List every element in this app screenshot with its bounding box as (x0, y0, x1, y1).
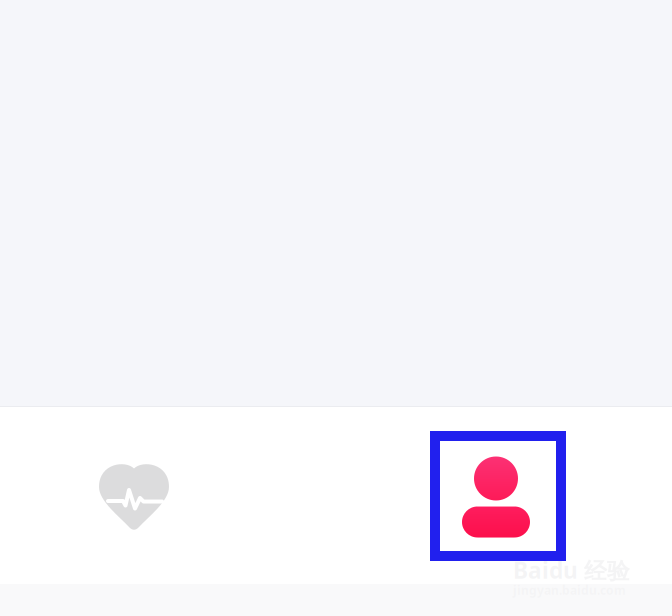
button[interactable]: Health (50, 407, 218, 584)
staticText: Baidu 经验 (513, 555, 630, 585)
staticText: jingyan.baidu.com (513, 582, 626, 598)
button[interactable]: Me (412, 408, 580, 585)
